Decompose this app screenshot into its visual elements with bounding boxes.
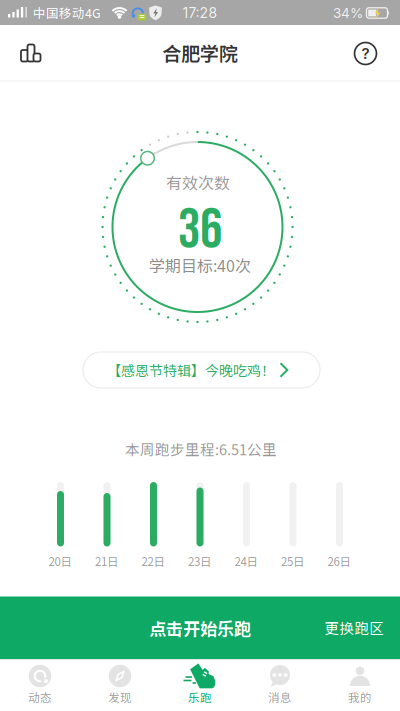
staticText: 有效次数 (166, 170, 230, 194)
staticText: 22日 (141, 553, 165, 569)
staticText: ? (361, 44, 369, 62)
staticText: 发现 (108, 689, 132, 705)
staticText: 本周跑步里程:6.51公里 (125, 438, 277, 459)
staticText: 乐跑 (188, 689, 212, 705)
staticText: 20日 (48, 553, 72, 569)
staticText: 23日 (188, 553, 212, 569)
staticText: 更换跑区 (324, 617, 384, 638)
button[interactable]: 动态 (0, 660, 80, 711)
button[interactable]: 乐跑 (160, 660, 240, 711)
staticText: 学期目标:40次 (149, 253, 251, 277)
button[interactable]: Statistics (8, 32, 50, 74)
staticText: 25日 (281, 553, 305, 569)
staticText: 26日 (327, 553, 351, 569)
button[interactable]: 更换跑区 (316, 596, 400, 659)
staticText: 点击开始乐跑 (149, 615, 251, 640)
button[interactable]: 点击开始乐跑 (0, 596, 316, 659)
button[interactable]: 我的 (320, 660, 400, 711)
button[interactable]: Help (346, 34, 384, 72)
button[interactable]: 发现 (80, 660, 160, 711)
staticText: 中国移动4G (33, 3, 101, 22)
button[interactable]: 消息 (240, 660, 320, 711)
staticText: 消息 (268, 689, 292, 705)
staticText: 我的 (348, 689, 372, 705)
staticText: 34% (333, 5, 363, 21)
staticText: 【感恩节特辑】今晚吃鸡！ (107, 360, 275, 380)
staticText: 36 (178, 197, 222, 264)
staticText: 合肥学院 (162, 39, 238, 66)
staticText: 17:28 (182, 4, 217, 21)
staticText: 21日 (95, 553, 119, 569)
button[interactable]: 【感恩节特辑】今晚吃鸡！ (83, 352, 320, 388)
staticText: 24日 (234, 553, 258, 569)
staticText: 动态 (28, 689, 52, 705)
